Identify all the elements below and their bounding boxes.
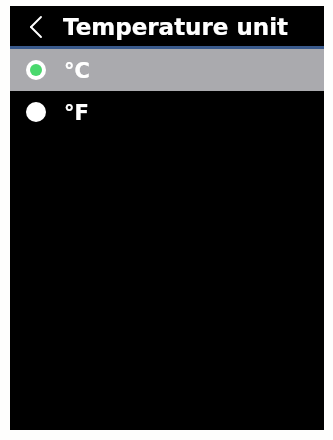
button[interactable]: Back — [19, 7, 52, 47]
staticText: °F — [64, 101, 89, 125]
staticText: °C — [64, 59, 90, 83]
button[interactable]: °C — [10, 49, 324, 91]
button[interactable]: °F — [10, 91, 324, 133]
staticText: Temperature unit — [63, 14, 289, 41]
